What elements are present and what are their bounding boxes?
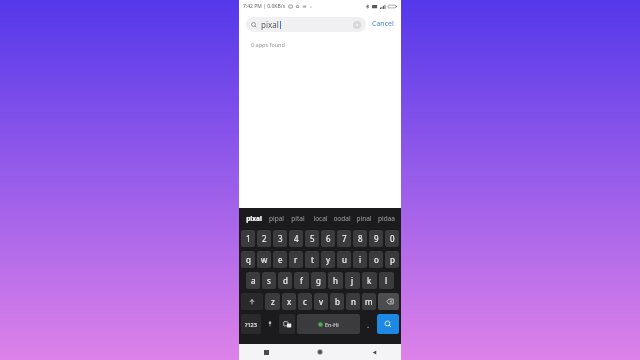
button[interactable]: i [353, 251, 367, 268]
staticText: j [351, 275, 354, 286]
staticText: o [374, 254, 379, 265]
button[interactable]: Switch language [279, 314, 295, 334]
staticText: x [287, 296, 292, 307]
button[interactable]: local [309, 208, 331, 228]
button[interactable]: . [362, 314, 375, 334]
staticText: q [246, 254, 251, 265]
staticText: l [385, 275, 388, 286]
button[interactable]: g [311, 272, 326, 289]
button[interactable]: u [337, 251, 351, 268]
staticText: i [359, 254, 362, 265]
button[interactable]: 7 [337, 230, 351, 247]
staticText: h [333, 275, 338, 286]
button[interactable]: 9 [369, 230, 383, 247]
button[interactable]: 2 [257, 230, 271, 247]
button[interactable]: t [305, 251, 319, 268]
button[interactable]: k [362, 272, 377, 289]
staticText: r [294, 254, 298, 265]
staticText: pidaa [378, 214, 395, 223]
staticText: e [278, 254, 283, 265]
staticText: d [283, 275, 288, 286]
button[interactable]: e [273, 251, 287, 268]
button[interactable]: ?123 [241, 314, 261, 334]
button[interactable]: Back [347, 344, 401, 360]
staticText: pinal [356, 214, 372, 223]
button[interactable]: v [314, 293, 328, 310]
button[interactable]: o [369, 251, 383, 268]
staticText: 0 apps found [251, 41, 285, 48]
button[interactable]: l [379, 272, 394, 289]
staticText: 4 [294, 233, 299, 244]
button[interactable]: Clear search [353, 21, 361, 29]
button[interactable]: 3 [273, 230, 287, 247]
staticText: 3 [278, 233, 283, 244]
button[interactable]: c [298, 293, 312, 310]
button[interactable]: p [385, 251, 399, 268]
staticText: pipal [269, 214, 284, 223]
staticText: 0 [390, 233, 395, 244]
staticText: 7 [342, 233, 347, 244]
button[interactable]: h [328, 272, 343, 289]
button[interactable]: 6 [321, 230, 335, 247]
button[interactable]: pipal [265, 208, 287, 228]
staticText: oodal [333, 214, 351, 223]
button[interactable]: 1 [241, 230, 255, 247]
staticText: u [342, 254, 347, 265]
button[interactable]: m [362, 293, 376, 310]
staticText: pital [291, 214, 305, 223]
button[interactable]: Search [377, 314, 399, 334]
staticText: k [367, 275, 372, 286]
button[interactable]: b [330, 293, 344, 310]
button[interactable]: Recent apps [239, 344, 293, 360]
button[interactable]: pinal [353, 208, 375, 228]
staticText: pixal [261, 19, 279, 30]
staticText: b [335, 296, 340, 307]
button[interactable]: n [346, 293, 360, 310]
button[interactable]: d [278, 272, 292, 289]
button[interactable]: pidaa [375, 208, 397, 228]
staticText: f [300, 275, 303, 286]
staticText: . [367, 319, 370, 330]
button[interactable]: 8 [353, 230, 367, 247]
staticText: a [251, 275, 256, 286]
staticText: 1 [246, 233, 251, 244]
button[interactable]: z [265, 293, 280, 310]
button[interactable]: w [257, 251, 271, 268]
staticText: 7:42 PM | 0.0KB/s [243, 3, 286, 10]
button[interactable]: pital [287, 208, 309, 228]
staticText: Cancel [372, 19, 394, 29]
staticText: t [311, 254, 314, 265]
button[interactable]: s [262, 272, 276, 289]
button[interactable]: 5 [305, 230, 319, 247]
button[interactable]: 0 [385, 230, 399, 247]
button[interactable]: Backspace [378, 293, 399, 310]
staticText: g [316, 275, 321, 286]
button[interactable]: pixal [243, 208, 265, 228]
staticText: En-Hi [325, 321, 339, 328]
button[interactable]: Shift [241, 293, 263, 310]
staticText: y [326, 254, 331, 265]
button[interactable]: r [289, 251, 303, 268]
staticText: 9 [374, 233, 379, 244]
button[interactable]: En-Hi [297, 314, 360, 334]
button[interactable]: Home [293, 344, 347, 360]
staticText: ?123 [245, 321, 257, 328]
button[interactable]: a [246, 272, 260, 289]
button[interactable]: pixal [246, 17, 366, 32]
staticText: w [261, 254, 268, 265]
button[interactable]: f [294, 272, 309, 289]
button[interactable]: 4 [289, 230, 303, 247]
button[interactable]: Cancel [370, 16, 396, 32]
staticText: c [303, 296, 307, 307]
button[interactable]: j [345, 272, 360, 289]
button[interactable]: y [321, 251, 335, 268]
button[interactable]: x [282, 293, 296, 310]
staticText: s [267, 275, 271, 286]
button[interactable]: oodal [331, 208, 353, 228]
staticText: 8 [358, 233, 363, 244]
staticText: 2 [262, 233, 267, 244]
button[interactable]: q [241, 251, 255, 268]
staticText: 6 [326, 233, 331, 244]
button[interactable]: Voice input [263, 314, 277, 334]
staticText: z [271, 296, 275, 307]
